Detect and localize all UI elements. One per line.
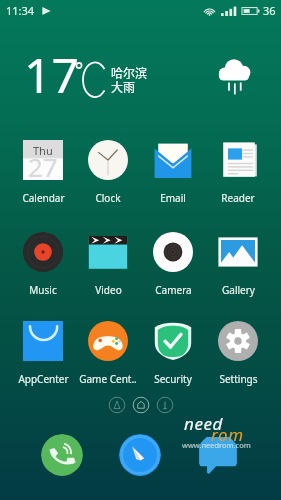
staticText: 哈尔滨 xyxy=(111,64,148,81)
staticText: Settings xyxy=(219,372,258,386)
button[interactable]: Camera xyxy=(141,232,205,297)
button[interactable]: Home page xyxy=(132,396,150,414)
staticText: Video xyxy=(95,283,122,297)
button[interactable]: Gallery xyxy=(206,232,270,297)
staticText: 11:34 xyxy=(6,3,35,18)
staticText: Email xyxy=(160,191,186,205)
staticText: AppCenter xyxy=(18,372,69,386)
staticText: 36 xyxy=(263,3,276,18)
button[interactable]: Previous page xyxy=(108,396,126,414)
button[interactable]: Next page xyxy=(156,396,174,414)
staticText: Thu xyxy=(33,143,53,158)
staticText: 大雨 xyxy=(111,78,136,95)
staticText: Game Cent.. xyxy=(79,372,137,386)
staticText: Camera xyxy=(155,283,192,297)
button[interactable]: AppCenter xyxy=(11,321,75,386)
staticText: rom xyxy=(211,423,244,446)
staticText: need xyxy=(184,412,224,435)
button[interactable]: Security xyxy=(141,321,205,386)
staticText: Gallery xyxy=(222,283,255,297)
button[interactable]: 17 xyxy=(0,0,281,500)
staticText: Music xyxy=(29,283,57,297)
staticText: www.needrom.com xyxy=(182,440,251,450)
button[interactable]: Game Cent.. xyxy=(76,321,140,386)
button[interactable]: Video xyxy=(76,232,140,297)
staticText: Clock xyxy=(95,191,121,205)
staticText: Calendar xyxy=(22,191,65,205)
button[interactable]: Browser xyxy=(119,434,161,476)
button[interactable]: Music xyxy=(11,232,75,297)
button[interactable]: Clock xyxy=(76,140,140,205)
button[interactable]: Thu xyxy=(11,140,75,205)
staticText: 27 xyxy=(28,149,58,184)
staticText: 17 xyxy=(24,42,79,107)
button[interactable]: Email xyxy=(141,140,205,205)
button[interactable]: Settings xyxy=(206,321,270,386)
button[interactable]: Messages xyxy=(197,434,239,476)
staticText: Reader xyxy=(221,191,255,205)
button[interactable]: Reader xyxy=(206,140,270,205)
staticText: Security xyxy=(154,372,192,386)
button[interactable]: Phone xyxy=(41,434,83,476)
